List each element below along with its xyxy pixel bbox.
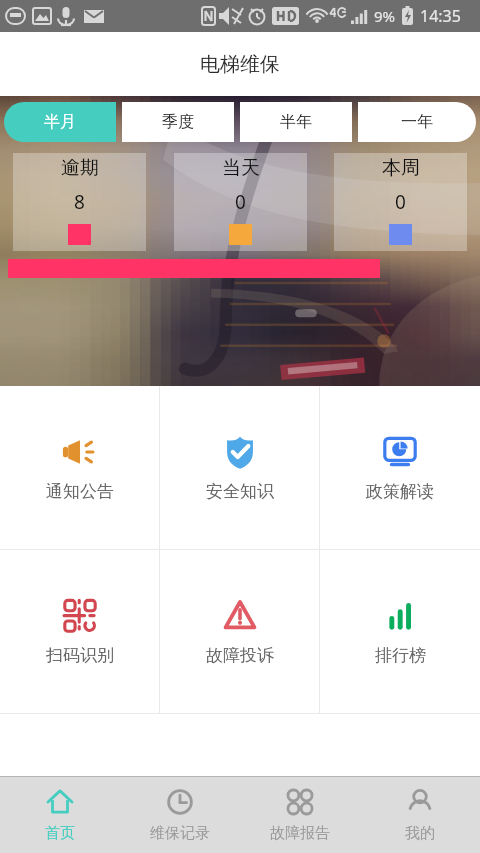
button[interactable]: 故障报告 [240, 777, 360, 853]
button[interactable]: 故障投诉 [160, 550, 320, 713]
staticText: 0 [235, 189, 246, 215]
staticText: 安全知识 [206, 481, 274, 502]
button[interactable]: 首页 [0, 777, 120, 853]
button[interactable]: 半月 [4, 102, 116, 142]
button[interactable]: 政策解读 [320, 386, 480, 549]
button[interactable]: 季度 [122, 102, 234, 142]
staticText: 8 [74, 189, 85, 215]
staticText: 政策解读 [366, 481, 434, 502]
staticText: 排行榜 [375, 645, 426, 666]
staticText: 首页 [45, 824, 75, 843]
button[interactable]: 我的 [360, 777, 480, 853]
staticText: 通知公告 [46, 481, 114, 502]
staticText: 季度 [162, 112, 194, 132]
staticText: 故障报告 [270, 824, 330, 843]
button[interactable]: 安全知识 [160, 386, 320, 549]
staticText: 扫码识别 [46, 645, 114, 666]
staticText: 本周 [382, 156, 420, 180]
button[interactable]: 维保记录 [120, 777, 240, 853]
staticText: 半年 [280, 112, 312, 132]
staticText: 一年 [401, 112, 433, 132]
button[interactable]: 扫码识别 [0, 550, 160, 713]
button[interactable]: 逾期 [13, 153, 146, 251]
staticText: 逾期 [61, 156, 99, 180]
button[interactable]: 本周 [334, 153, 467, 251]
staticText: 故障投诉 [206, 645, 274, 666]
staticText: 0 [395, 189, 406, 215]
staticText: 半月 [44, 112, 76, 132]
staticText: 电梯维保 [200, 52, 280, 77]
staticText: 我的 [405, 824, 435, 843]
staticText: 14:35 [420, 5, 461, 27]
button[interactable]: 半年 [240, 102, 352, 142]
button[interactable]: 通知公告 [0, 386, 160, 549]
staticText: 9% [374, 6, 396, 26]
staticText: 维保记录 [150, 824, 210, 843]
staticText: 当天 [222, 156, 260, 180]
button[interactable]: 一年 [358, 102, 476, 142]
button[interactable]: 当天 [174, 153, 307, 251]
button[interactable]: 排行榜 [320, 550, 480, 713]
